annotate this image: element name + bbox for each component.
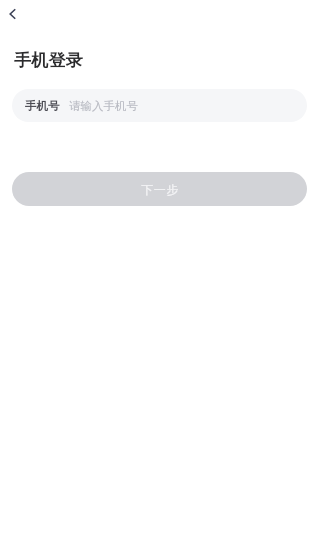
staticText: 请输入手机号 (69, 99, 138, 113)
button[interactable]: Back (2, 3, 24, 25)
staticText: 下一步 (141, 182, 179, 197)
button[interactable]: 下一步 (12, 172, 307, 206)
staticText: 手机登录 (14, 50, 83, 71)
button[interactable]: 手机号 (12, 89, 307, 122)
staticText: 手机号 (25, 99, 60, 113)
